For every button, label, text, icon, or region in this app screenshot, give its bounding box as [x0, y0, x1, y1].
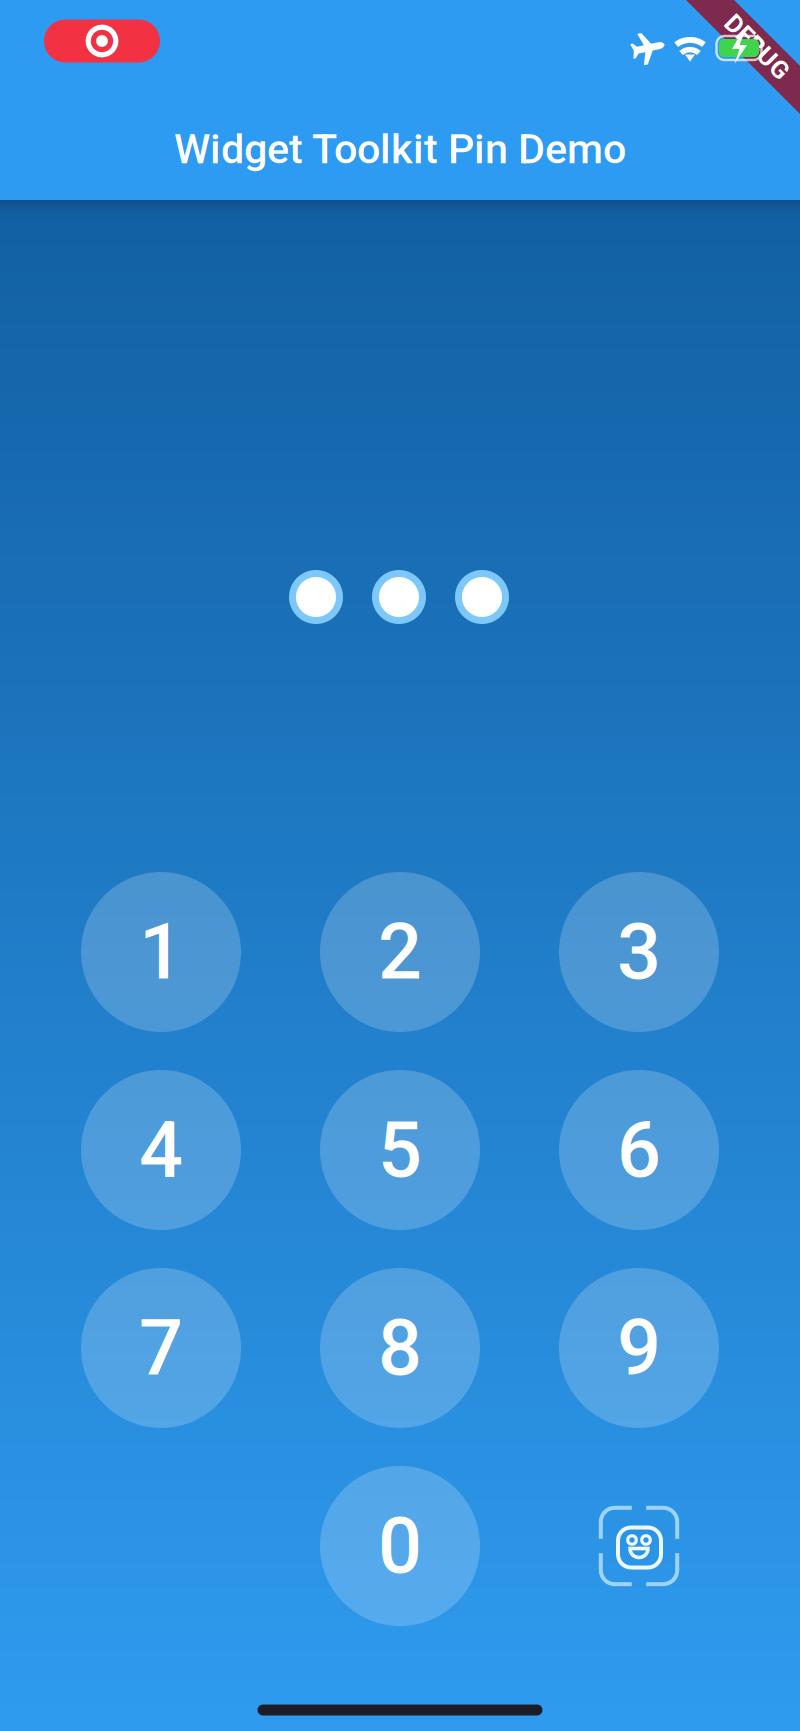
button[interactable]: 6 — [559, 1070, 719, 1230]
staticText: Widget Toolkit Pin Demo — [174, 125, 626, 173]
staticText: 9 — [617, 1303, 661, 1393]
button[interactable]: 4 — [81, 1070, 241, 1230]
button[interactable]: 2 — [320, 872, 480, 1032]
button[interactable]: Unlock with Face ID — [559, 1466, 719, 1626]
button[interactable]: 5 — [320, 1070, 480, 1230]
staticText: DEBUG — [717, 32, 797, 62]
staticText: 4 — [139, 1105, 183, 1195]
button[interactable]: 0 — [320, 1466, 480, 1626]
staticText: 2 — [378, 907, 422, 997]
button[interactable]: 7 — [81, 1268, 241, 1428]
staticText: 3 — [617, 907, 661, 997]
staticText: 0 — [378, 1501, 422, 1591]
staticText: 5 — [378, 1105, 422, 1195]
staticText: 1 — [139, 907, 183, 997]
button[interactable]: 3 — [559, 872, 719, 1032]
button[interactable]: 9 — [559, 1268, 719, 1428]
button[interactable]: 8 — [320, 1268, 480, 1428]
staticText: 7 — [139, 1303, 183, 1393]
staticText: 6 — [617, 1105, 661, 1195]
button[interactable]: 1 — [81, 872, 241, 1032]
staticText: 8 — [378, 1303, 422, 1393]
